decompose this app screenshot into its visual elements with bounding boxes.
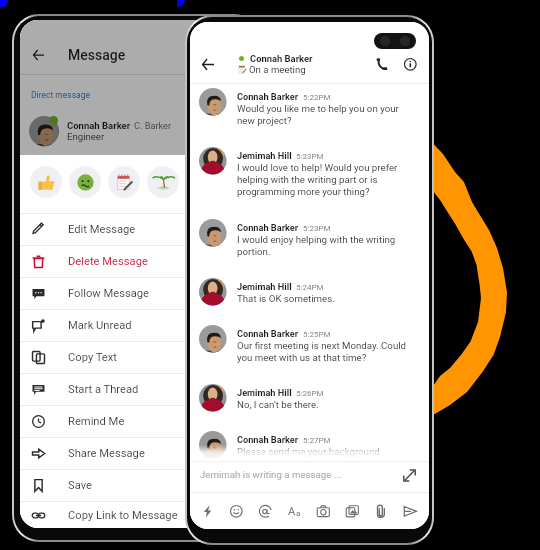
staticText: Engineer [67,131,105,142]
button[interactable]: Reaction [108,166,140,198]
staticText: 5:25PM [303,330,331,339]
button[interactable]: Info [397,51,423,77]
button[interactable]: Back [192,49,223,80]
staticText: Our first meeting is next Monday. Could … [237,339,407,363]
button[interactable]: Jemimah Hill [199,280,423,308]
staticText: No, I can't be there. [237,398,319,410]
button[interactable]: Mention [251,498,280,524]
button[interactable]: Camera [309,498,338,524]
staticText: 5:23PM [296,152,324,161]
staticText: Jemimah Hill [237,387,292,398]
staticText: Copy Text [68,351,118,364]
button[interactable]: Connah Barker [199,327,423,363]
staticText: Jemimah is writing a message ... [200,469,342,480]
staticText: Share Message [68,447,145,460]
button[interactable]: Save [20,470,256,501]
button[interactable]: Connah Barker [199,221,423,257]
button[interactable]: Attach file [367,498,396,524]
button[interactable]: Reaction [69,166,101,198]
staticText: Delete Message [68,255,148,268]
button[interactable]: Delete Message [20,246,256,277]
staticText: 5:27PM [303,436,331,445]
button[interactable]: Mark Unread [20,310,256,341]
staticText: Copy Link to Message [68,509,178,522]
staticText: 5:24PM [296,283,324,292]
button[interactable]: Photo [338,498,367,524]
staticText: Follow Message [68,287,149,300]
button[interactable]: Connah Barker [29,116,256,146]
button[interactable]: Emoji [222,498,251,524]
staticText: 5:23PM [303,224,331,233]
staticText: Save [68,479,92,492]
button[interactable]: Expand [398,464,420,486]
staticText: 5:22PM [303,93,331,102]
button[interactable]: Call [369,51,395,77]
staticText: Jemimah Hill [237,150,292,161]
button[interactable]: Copy Text [20,342,256,373]
staticText: Start a Thread [68,383,139,396]
staticText: That is OK sometimes. [237,292,335,304]
staticText: I would love to help! Would you prefer h… [237,161,398,197]
button[interactable]: Reaction [147,166,179,198]
staticText: On a meeting [249,64,306,75]
staticText: Message [68,47,126,63]
button[interactable]: Connah Barker [199,90,423,126]
staticText: Edit Message [68,223,136,236]
staticText: Please send me your background [237,445,380,457]
button[interactable]: Start a Thread [20,374,256,405]
button[interactable]: Jemimah is writing a message ... [190,462,429,487]
button[interactable]: Connah Barker [199,433,423,461]
button[interactable]: Jemimah Hill [199,149,423,197]
button[interactable]: Remind Me [20,406,256,437]
staticText: 5:26PM [296,389,324,398]
button[interactable]: Follow Message [20,278,256,309]
staticText: Connah Barker [237,91,299,102]
staticText: Mark Unread [68,319,132,332]
staticText: A [288,505,296,518]
staticText: Connah Barker [237,434,299,445]
button[interactable]: Send [396,498,425,524]
staticText: C. Barker [134,120,172,131]
staticText: Connah Barker [250,53,313,64]
button[interactable]: Share Message [20,438,256,469]
staticText: Connah Barker [237,222,299,233]
staticText: a [296,509,301,518]
staticText: Jemimah Hill [237,281,292,292]
staticText: Remind Me [68,415,125,428]
button[interactable]: Formatting [193,498,222,524]
button[interactable]: Jemimah Hill [199,386,423,414]
button[interactable]: Back [23,40,53,70]
staticText: Connah Barker [237,328,299,339]
button[interactable]: Reaction [30,166,62,198]
button[interactable]: Copy Link to Message [20,502,256,528]
staticText: Direct message [31,90,90,100]
button[interactable]: Edit Message [20,214,256,245]
staticText: I would enjoy helping with the writing p… [237,233,396,257]
staticText: Would you like me to help you on your ne… [237,102,399,126]
button[interactable]: Text style [280,498,309,524]
staticText: Connah Barker [67,120,131,131]
